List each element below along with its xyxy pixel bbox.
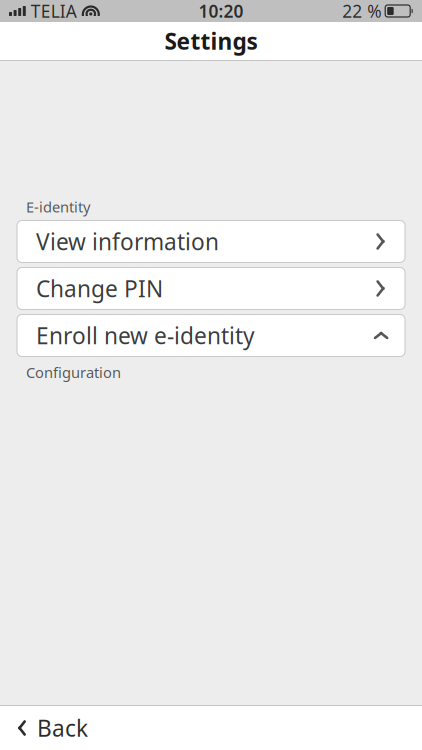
button[interactable]: Change PIN [17,267,405,309]
button[interactable]: Enroll new e-identity [17,314,405,356]
staticText: Enroll new e-identity [36,320,255,350]
staticText: View information [36,226,219,256]
staticText: Configuration [26,362,121,382]
staticText: TELIA [31,0,77,22]
staticText: Settings [164,26,257,56]
staticText: 22 % [342,0,381,22]
staticText: 10:20 [198,0,243,22]
staticText: E-identity [26,197,90,216]
staticText: Change PIN [36,273,163,303]
button[interactable]: Back [0,706,102,750]
staticText: Back [37,713,88,743]
button[interactable]: View information [17,220,405,262]
